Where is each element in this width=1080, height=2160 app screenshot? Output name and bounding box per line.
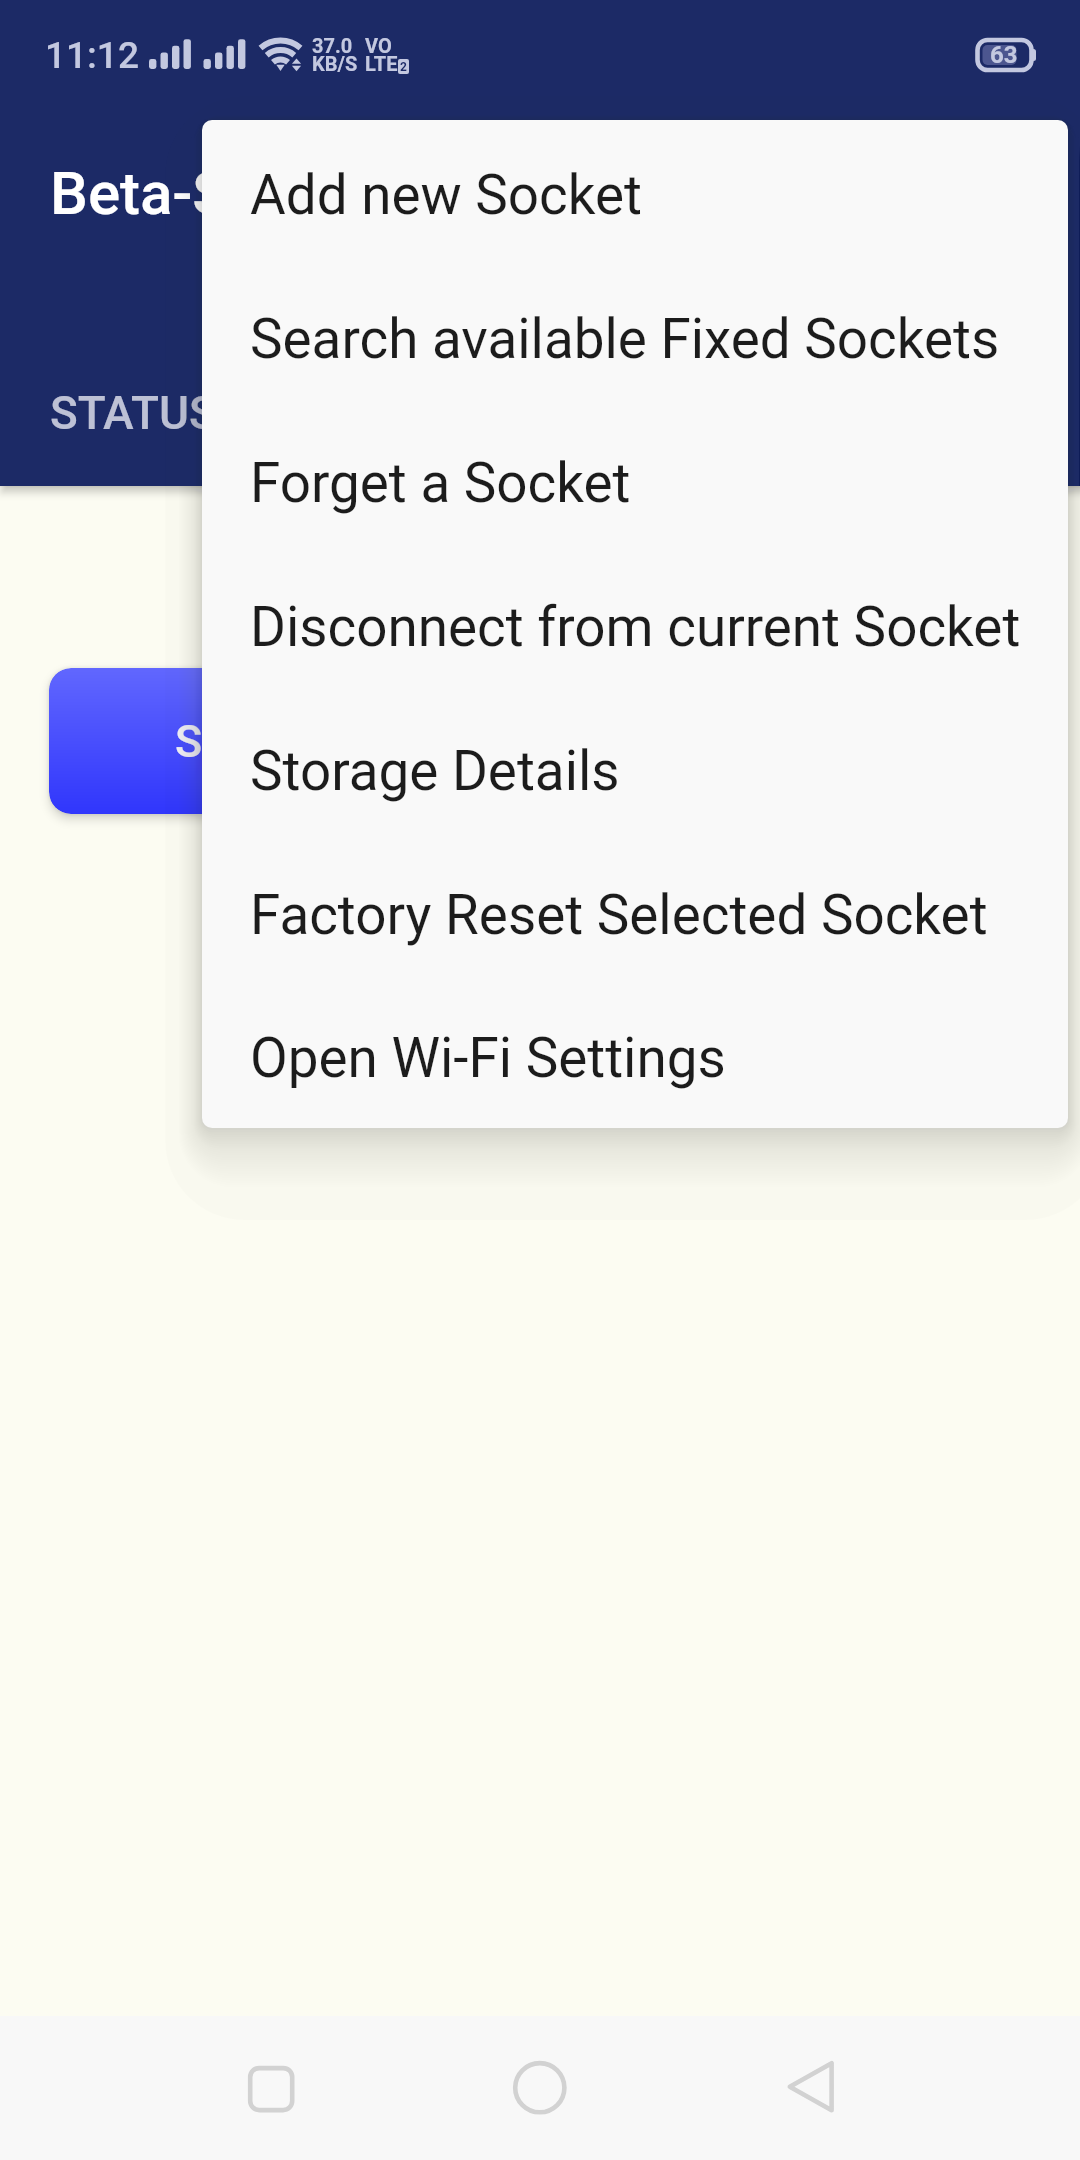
button[interactable]: Disconnect from current Socket [202,555,1068,699]
button[interactable]: CONTROL [321,354,633,472]
staticText: STATUS [50,386,217,440]
staticText: Open Wi-Fi Settings [250,1026,726,1090]
button[interactable]: Storage Details [202,699,1068,843]
button[interactable]: Open Wi-Fi Settings [202,987,1068,1128]
button[interactable]: Factory Reset Selected Socket [202,843,1068,987]
staticText: Search available Fixed Sockets [250,307,1000,371]
staticText: Forget a Socket [250,451,631,515]
staticText: KB/S [312,52,358,75]
staticText: Beta-Socket [50,158,378,228]
staticText: 2 [400,60,407,74]
staticText: Factory Reset Selected Socket [250,883,988,947]
button[interactable]: Back [720,2016,900,2160]
staticText: VO [365,34,392,57]
button[interactable]: SCAN [49,668,419,814]
staticText: 63 [990,41,1018,69]
staticText: 11:12 [45,34,139,77]
staticText: Disconnect from current Socket [250,595,1021,659]
staticText: SCAN [175,715,294,768]
button[interactable]: SETTINGS [633,354,953,472]
staticText: 37.0 [312,34,353,57]
staticText: LTE [365,52,398,75]
button[interactable]: Add new Socket [202,123,1068,267]
button[interactable]: Forget a Socket [202,411,1068,555]
button[interactable]: Home [450,2016,630,2160]
button[interactable]: Recent apps [180,2016,360,2160]
staticText: Storage Details [250,739,620,803]
button[interactable]: STATUS [50,354,321,472]
staticText: Add new Socket [250,163,642,227]
button[interactable]: Search available Fixed Sockets [202,267,1068,411]
